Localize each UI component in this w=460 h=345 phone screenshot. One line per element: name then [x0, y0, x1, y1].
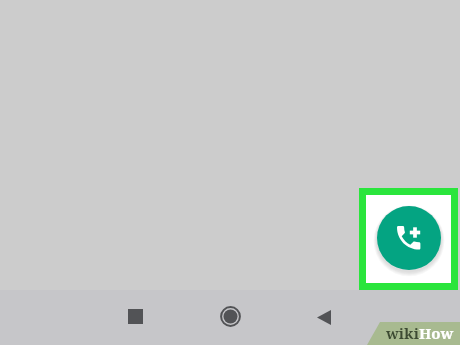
staticText: How [419, 323, 454, 343]
button[interactable]: New call [377, 206, 441, 270]
button[interactable]: Home [210, 296, 251, 337]
button[interactable]: Recent apps [115, 296, 155, 336]
staticText: wiki [386, 323, 419, 343]
button[interactable]: Back [304, 297, 344, 337]
